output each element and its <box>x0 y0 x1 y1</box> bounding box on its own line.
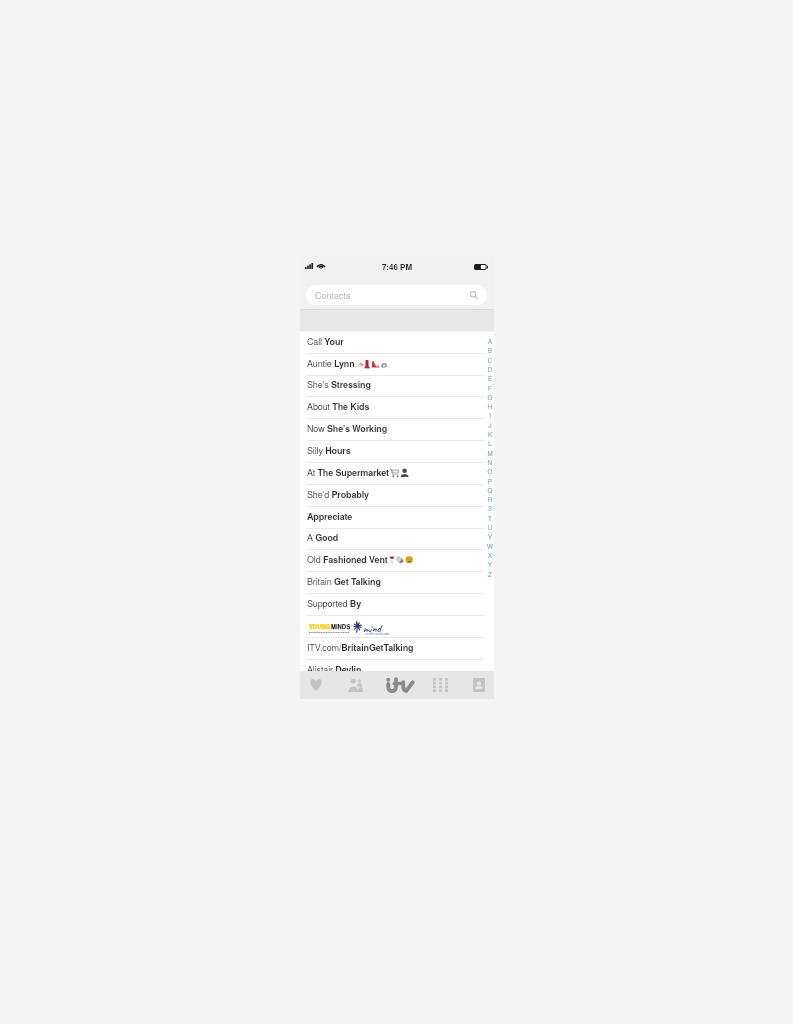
staticText: At The Supermarket <box>307 466 389 479</box>
staticText: Now She's Working <box>307 422 388 435</box>
button[interactable]: Supported By <box>300 594 494 616</box>
button[interactable]: Recents <box>458 671 499 699</box>
staticText: L <box>486 439 494 448</box>
button[interactable]: Contacts <box>306 285 487 305</box>
button[interactable]: Britain Get Talking <box>300 572 494 594</box>
staticText: A <box>486 337 494 346</box>
staticText: Supported By <box>307 597 362 610</box>
button[interactable]: Keypad <box>420 671 461 699</box>
staticText: Call Your <box>307 335 344 348</box>
staticText: Z <box>486 570 494 579</box>
button[interactable]: Alphabet index <box>486 337 494 581</box>
staticText: for better mental health <box>365 632 390 635</box>
staticText: F <box>486 384 494 393</box>
staticText: MiNDS <box>331 622 351 631</box>
staticText: C <box>486 356 494 365</box>
button[interactable]: Old Fashioned Vent <box>300 550 494 572</box>
button[interactable]: Appreciate <box>300 507 494 529</box>
button[interactable]: Alistair Devlin <box>300 660 494 682</box>
button[interactable]: She'd Probably <box>300 485 494 507</box>
button[interactable]: Now She's Working <box>300 419 494 441</box>
staticText: She's Stressing <box>307 378 371 391</box>
staticText: Old Fashioned Vent <box>307 553 388 566</box>
button[interactable]: YoungMinds and Mind charity logos <box>300 616 494 638</box>
staticText: D <box>486 365 494 374</box>
staticText: U <box>486 523 494 532</box>
button[interactable]: ITV <box>379 671 420 699</box>
staticText: She'd Probably <box>307 488 369 501</box>
staticText: Alistair Devlin <box>307 663 362 676</box>
button[interactable]: She's Stressing <box>300 375 494 397</box>
staticText: R <box>486 495 494 504</box>
staticText: K <box>486 430 494 439</box>
staticText: M <box>486 449 494 458</box>
staticText: X <box>486 551 494 560</box>
staticText: N <box>486 458 494 467</box>
staticText: Contacts <box>315 289 351 302</box>
staticText: About The Kids <box>307 400 370 413</box>
staticText: B <box>486 346 494 355</box>
staticText: Britain Get Talking <box>307 575 381 588</box>
button[interactable]: Call Your <box>300 332 494 354</box>
staticText: G <box>486 393 494 402</box>
staticText: H <box>486 402 494 411</box>
staticText: P <box>486 477 494 486</box>
staticText: W <box>486 542 494 551</box>
staticText: YOUNG <box>309 622 331 631</box>
staticText: 7:46 PM <box>300 261 494 272</box>
button[interactable]: About The Kids <box>300 397 494 419</box>
staticText: O <box>486 467 494 476</box>
button[interactable]: At The Supermarket <box>300 463 494 485</box>
staticText: mind <box>363 621 381 635</box>
staticText: Silly Hours <box>307 444 351 457</box>
button[interactable]: ITV.com/BritainGetTalking <box>300 638 494 660</box>
staticText: ITV.com/BritainGetTalking <box>307 641 414 654</box>
staticText: Appreciate <box>307 510 353 523</box>
staticText: Q <box>486 486 494 495</box>
staticText: Y <box>486 560 494 569</box>
button[interactable]: Auntie Lynn <box>300 354 494 376</box>
staticText: Auntie Lynn <box>307 357 355 370</box>
staticText: E <box>486 374 494 383</box>
button[interactable]: Favourites <box>295 671 336 699</box>
staticText: S <box>486 504 494 513</box>
button[interactable]: Contacts <box>335 671 376 699</box>
button[interactable]: A Good <box>300 528 494 550</box>
staticText: J <box>486 421 494 430</box>
staticText: A Good <box>307 531 339 544</box>
button[interactable]: Silly Hours <box>300 441 494 463</box>
staticText: V <box>486 532 494 541</box>
staticText: I <box>486 411 494 420</box>
staticText: T <box>486 514 494 523</box>
